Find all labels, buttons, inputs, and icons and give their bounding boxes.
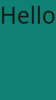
staticText: Hello (0, 0, 56, 30)
